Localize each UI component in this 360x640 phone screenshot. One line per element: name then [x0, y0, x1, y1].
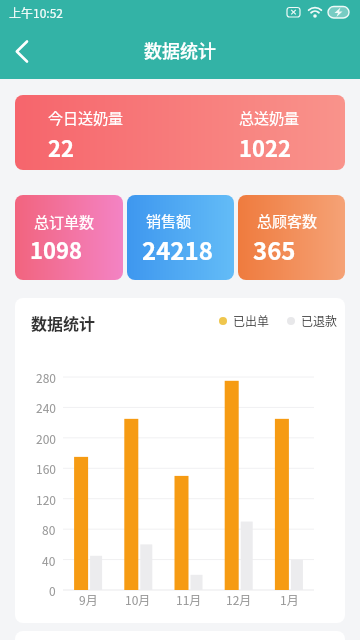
- staticText: 280: [36, 369, 56, 385]
- staticText: 1098: [30, 233, 82, 265]
- staticText: 120: [36, 491, 56, 507]
- button[interactable]: [0, 24, 44, 79]
- staticText: 总送奶量: [239, 107, 300, 129]
- staticText: 1022: [239, 131, 291, 163]
- button[interactable]: 总订单数: [15, 195, 123, 280]
- staticText: 已出单: [233, 312, 270, 329]
- button[interactable]: 销售额: [127, 195, 234, 280]
- staticText: 销售额: [146, 210, 192, 232]
- staticText: 200: [36, 430, 56, 446]
- staticText: 0: [49, 582, 56, 598]
- staticText: 数据统计: [31, 311, 96, 334]
- staticText: 总订单数: [34, 211, 95, 233]
- staticText: 已退款: [301, 312, 338, 329]
- staticText: 今日送奶量: [48, 107, 124, 129]
- button[interactable]: 今日送奶量: [15, 95, 345, 170]
- staticText: 80: [42, 521, 56, 537]
- staticText: 总顾客数: [257, 210, 318, 232]
- staticText: 160: [36, 460, 56, 476]
- staticText: 1月: [280, 591, 299, 608]
- staticText: 10月: [125, 591, 151, 608]
- staticText: 11月: [176, 591, 202, 608]
- button[interactable]: 总顾客数: [238, 195, 345, 280]
- staticText: 24218: [142, 232, 213, 267]
- staticText: 40: [42, 552, 56, 568]
- staticText: 22: [48, 131, 74, 163]
- staticText: 12月: [226, 591, 252, 608]
- staticText: 365: [253, 232, 296, 267]
- staticText: 数据统计: [144, 37, 216, 63]
- staticText: 上午10:52: [9, 4, 63, 21]
- staticText: 9月: [79, 591, 98, 608]
- staticText: 240: [36, 399, 56, 415]
